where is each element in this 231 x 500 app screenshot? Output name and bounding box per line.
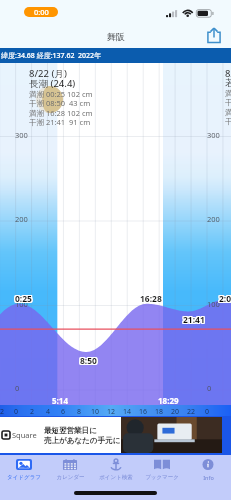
staticText: 0:25 xyxy=(14,293,31,305)
staticText: 2:0 xyxy=(219,293,231,305)
staticText: 満潮 xyxy=(225,89,231,98)
staticText: 干潮 xyxy=(225,117,231,126)
staticText: 18:29 xyxy=(158,395,179,406)
staticText: 4 xyxy=(40,407,56,417)
staticText: 0:25 xyxy=(15,294,32,306)
staticText: 2:0 xyxy=(220,293,231,305)
staticText: 2:0 xyxy=(219,292,231,304)
staticText: タイドグラフ xyxy=(7,474,41,481)
staticText: 8 xyxy=(71,407,87,417)
staticText: 2:0 xyxy=(218,294,231,306)
staticText: 300 xyxy=(15,130,28,140)
staticText: 満潮 16:28 102 cm xyxy=(29,108,93,118)
staticText: 8/23 xyxy=(225,67,231,80)
staticText: 200 xyxy=(15,214,28,224)
staticText: 干潮 08:50 43 cm xyxy=(29,98,91,108)
staticText: 16:28 xyxy=(139,293,161,305)
staticText: 0 xyxy=(15,383,20,393)
staticText: 22 xyxy=(0,407,8,417)
staticText: 21:41 xyxy=(182,314,204,326)
staticText: 8:50 xyxy=(79,356,96,368)
staticText: 売上があなたの手元に xyxy=(44,436,121,445)
staticText: カレンダー xyxy=(56,474,85,481)
staticText: 0 xyxy=(199,407,215,417)
staticText: 100 xyxy=(15,299,28,309)
staticText: 16:28 xyxy=(141,294,163,306)
staticText: 16:28 xyxy=(140,294,162,306)
staticText: 緯度:34.68 経度:137.62 2022年 xyxy=(1,51,102,61)
staticText: 8:50 xyxy=(80,356,97,368)
staticText: 16:28 xyxy=(141,292,163,304)
staticText: 若潮 xyxy=(225,77,231,89)
staticText: 21:41 xyxy=(184,314,206,326)
staticText: 0:25 xyxy=(16,293,33,305)
staticText: 8:50 xyxy=(79,354,96,366)
button[interactable]: カレンダー xyxy=(47,455,93,481)
staticText: 2:0 xyxy=(218,292,231,304)
staticText: 0 xyxy=(8,407,24,417)
staticText: 2:0 xyxy=(220,294,231,306)
staticText: 8:50 xyxy=(81,355,98,367)
staticText: 21:41 xyxy=(184,313,206,325)
staticText: 長潮 (24.4) xyxy=(29,77,76,90)
staticText: 21:41 xyxy=(183,314,205,326)
staticText: 2:0 xyxy=(220,292,231,304)
staticText: 干潮 21:41 91 cm xyxy=(29,117,91,127)
staticText: 2 xyxy=(24,407,40,417)
button[interactable]: Info xyxy=(185,455,231,481)
button[interactable]: ブックマーク xyxy=(139,455,185,481)
staticText: 16:28 xyxy=(140,292,162,304)
staticText: 0:25 xyxy=(16,292,33,304)
staticText: 干潮 xyxy=(225,98,231,107)
staticText: 満潮 xyxy=(225,108,231,117)
staticText: 0:25 xyxy=(14,292,31,304)
staticText: 8/22 (月) xyxy=(29,67,67,80)
staticText: 20 xyxy=(167,407,183,417)
staticText: 2:0 xyxy=(219,294,231,306)
staticText: ブックマーク xyxy=(145,474,179,481)
staticText: 8:50 xyxy=(79,355,96,367)
staticText: 0:25 xyxy=(15,293,32,305)
staticText: 0:25 xyxy=(16,294,33,306)
staticText: Info xyxy=(203,474,214,481)
staticText: 2:0 xyxy=(218,293,231,305)
button[interactable]: タイドグラフ xyxy=(0,455,47,481)
button[interactable]: Share xyxy=(206,27,222,43)
staticText: 8:50 xyxy=(81,354,98,366)
staticText: 14 xyxy=(119,407,135,417)
staticText: 舞阪 xyxy=(107,31,125,42)
staticText: 満潮 00:25 102 cm xyxy=(29,89,93,99)
staticText: 16:28 xyxy=(139,292,161,304)
staticText: 0 xyxy=(207,383,212,393)
staticText: 8:50 xyxy=(80,355,97,367)
staticText: 12 xyxy=(103,407,119,417)
staticText: 21:41 xyxy=(183,315,205,327)
staticText: 5:14 xyxy=(52,395,68,406)
staticText: 21:41 xyxy=(184,315,206,327)
staticText: 300 xyxy=(207,130,220,140)
staticText: 8:50 xyxy=(80,354,97,366)
staticText: 最短翌営業日に xyxy=(44,426,97,435)
staticText: 200 xyxy=(207,214,220,224)
staticText: 8:50 xyxy=(81,356,98,368)
staticText: 0:25 xyxy=(15,292,32,304)
staticText: Square xyxy=(12,430,37,440)
staticText: 0:25 xyxy=(14,294,31,306)
staticText: 100 xyxy=(207,299,220,309)
staticText: 18 xyxy=(151,407,167,417)
staticText: 21:41 xyxy=(183,313,205,325)
button[interactable]: ポイント検索 xyxy=(93,455,139,481)
staticText: 21:41 xyxy=(182,315,204,327)
staticText: 21:41 xyxy=(182,313,204,325)
staticText: 16:28 xyxy=(139,294,161,306)
staticText: 6 xyxy=(55,407,71,417)
staticText: 16 xyxy=(135,407,151,417)
staticText: 22 xyxy=(183,407,199,417)
staticText: ポイント検索 xyxy=(99,474,133,481)
staticText: 10 xyxy=(87,407,103,417)
staticText: 16:28 xyxy=(140,293,162,305)
staticText: 16:28 xyxy=(141,293,163,305)
staticText: 0:00 xyxy=(34,7,49,17)
